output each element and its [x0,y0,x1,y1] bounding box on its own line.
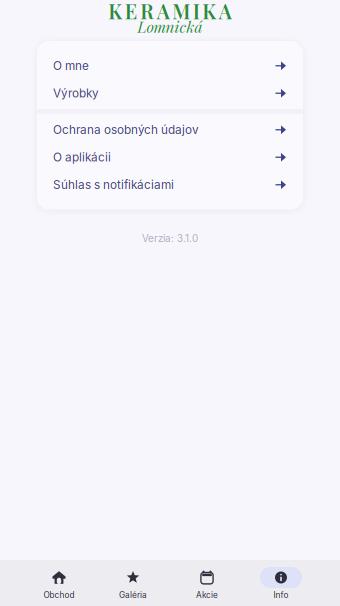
staticText: Info [273,590,288,600]
button[interactable]: Galéria [96,567,170,599]
button[interactable]: Obchod [22,567,96,599]
button[interactable]: Ochrana osobných údajov [37,116,303,143]
button[interactable]: Info [244,567,318,599]
staticText: Akcie [196,590,218,600]
staticText: Súhlas s notifikáciami [53,178,174,192]
button[interactable]: O aplikácii [37,143,303,171]
staticText: Ochrana osobných údajov [53,123,199,137]
staticText: Lomnická [137,16,202,37]
staticText: O aplikácii [53,150,111,164]
button[interactable]: Akcie [170,567,244,599]
button[interactable]: O mne [37,52,303,79]
staticText: Verzia: 3.1.0 [142,232,198,244]
staticText: Galéria [119,590,147,600]
staticText: KERAMIKA [108,0,232,24]
button[interactable]: Súhlas s notifikáciami [37,171,303,198]
button[interactable]: Výrobky [37,79,303,107]
staticText: Obchod [43,590,74,600]
staticText: O mne [53,59,89,73]
staticText: Výrobky [53,86,99,100]
